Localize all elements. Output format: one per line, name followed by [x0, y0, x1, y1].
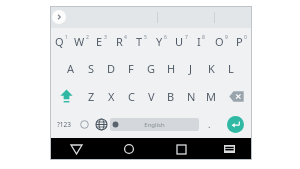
staticText: F [128, 61, 134, 76]
staticText: 3 [104, 34, 107, 41]
staticText: E [96, 34, 103, 49]
button[interactable]: X [101, 82, 121, 110]
button[interactable]: R [111, 28, 131, 55]
button[interactable]: K [201, 55, 221, 82]
button[interactable]: Z [81, 82, 101, 110]
staticText: W [74, 34, 85, 49]
staticText: D [107, 61, 116, 76]
button[interactable]: ?123 [51, 110, 76, 138]
staticText: N [187, 89, 196, 104]
button[interactable]: Change language [93, 110, 110, 138]
button[interactable]: V [141, 82, 161, 110]
staticText: X [108, 89, 115, 104]
button[interactable]: G [141, 55, 161, 82]
button[interactable]: M [201, 82, 221, 110]
staticText: S [88, 61, 95, 76]
button[interactable]: T [131, 28, 151, 55]
staticText: T [136, 34, 143, 49]
staticText: 7 [185, 34, 188, 41]
button[interactable]: E [91, 28, 111, 55]
staticText: B [167, 89, 175, 104]
staticText: 9 [225, 34, 228, 41]
button[interactable]: N [181, 82, 201, 110]
button[interactable]: English [110, 118, 199, 131]
staticText: G [147, 61, 156, 76]
button[interactable]: Shift [51, 82, 81, 110]
button[interactable]: C [121, 82, 141, 110]
staticText: 4 [124, 34, 127, 41]
staticText: English [144, 121, 165, 129]
staticText: L [228, 61, 234, 76]
button[interactable]: I [191, 28, 211, 55]
button[interactable]: H [161, 55, 181, 82]
button[interactable]: Emoji [76, 110, 93, 138]
button[interactable]: O [211, 28, 231, 55]
staticText: 5 [144, 34, 147, 41]
staticText: U [175, 34, 184, 49]
staticText: V [148, 89, 155, 104]
button[interactable]: F [121, 55, 141, 82]
staticText: O [215, 34, 224, 49]
button[interactable]: S [81, 55, 101, 82]
button[interactable]: W [71, 28, 91, 55]
button[interactable]: Recents [155, 138, 207, 160]
staticText: 8 [202, 34, 205, 41]
staticText: J [189, 61, 193, 76]
button[interactable]: Y [151, 28, 171, 55]
staticText: Y [156, 34, 163, 49]
button[interactable]: . [199, 110, 220, 138]
button[interactable]: Hide keyboard [50, 138, 103, 160]
staticText: Q [55, 34, 64, 49]
button[interactable]: B [161, 82, 181, 110]
button[interactable]: P [231, 28, 251, 55]
staticText: H [167, 61, 176, 76]
staticText: P [236, 34, 243, 49]
button[interactable]: Backspace [221, 82, 251, 110]
staticText: R [116, 34, 123, 49]
button[interactable]: D [101, 55, 121, 82]
staticText: I [197, 34, 201, 49]
staticText: . [208, 118, 211, 130]
button[interactable]: A [61, 55, 81, 82]
button[interactable]: Enter [227, 116, 244, 133]
staticText: A [67, 61, 75, 76]
staticText: ?123 [57, 120, 71, 129]
staticText: C [128, 89, 135, 104]
button[interactable]: J [181, 55, 201, 82]
staticText: 1 [65, 34, 68, 41]
button[interactable]: Expand suggestions [52, 10, 66, 24]
staticText: 6 [164, 34, 167, 41]
staticText: M [206, 89, 216, 104]
button[interactable]: Q [51, 28, 71, 55]
staticText: K [208, 61, 215, 76]
button[interactable]: Home [103, 138, 155, 160]
staticText: 2 [86, 34, 89, 41]
button[interactable]: L [221, 55, 241, 82]
staticText: Z [88, 89, 95, 104]
button[interactable]: Switch input method [207, 138, 252, 160]
button[interactable]: U [171, 28, 191, 55]
staticText: 0 [244, 34, 247, 41]
